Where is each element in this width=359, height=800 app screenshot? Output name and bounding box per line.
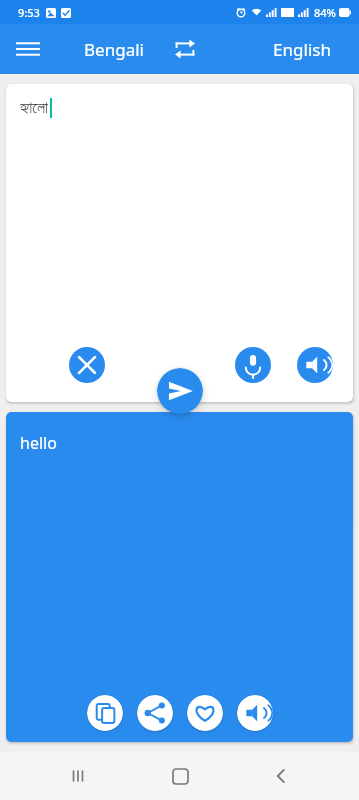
button[interactable]: Voice input [235, 347, 271, 383]
button[interactable]: Copy translation [87, 695, 123, 731]
button[interactable]: Translate [157, 368, 203, 414]
button[interactable]: Add to favorites [187, 695, 223, 731]
button[interactable]: Swap languages [164, 28, 206, 70]
staticText: 9:53 [18, 5, 40, 20]
staticText: hello [20, 432, 57, 454]
button[interactable]: Back [257, 752, 305, 800]
staticText: 84% [314, 5, 336, 20]
button[interactable]: Recent apps [54, 752, 102, 800]
button[interactable]: Share translation [137, 695, 173, 731]
button[interactable]: Speak source text [297, 347, 333, 383]
button[interactable]: Open navigation menu [8, 29, 48, 69]
staticText: English [273, 38, 331, 61]
button[interactable]: Speak translation [237, 695, 273, 731]
button[interactable]: English [254, 24, 349, 74]
staticText: হ্যালো [20, 100, 49, 116]
button[interactable]: Home [156, 752, 204, 800]
button[interactable]: Clear text [69, 347, 105, 383]
button[interactable]: Bengali [74, 24, 154, 74]
staticText: Bengali [84, 38, 144, 61]
